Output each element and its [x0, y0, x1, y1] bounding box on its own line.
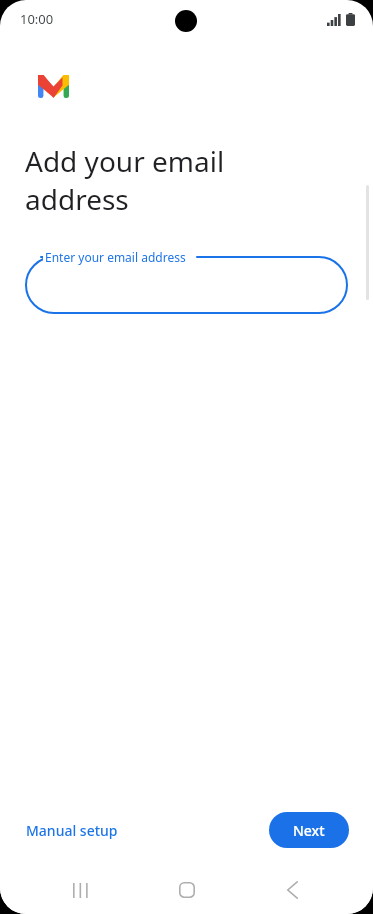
button[interactable]: Manual setup	[24, 813, 120, 848]
staticText: 10:00	[20, 10, 54, 28]
button[interactable]: Recent apps	[57, 866, 105, 914]
button[interactable]: Home	[163, 866, 211, 914]
button[interactable]: Back	[268, 866, 316, 914]
staticText: Manual setup	[26, 821, 118, 840]
button[interactable]: Enter your email address	[25, 256, 348, 314]
staticText: Next	[293, 821, 325, 840]
button[interactable]: Next	[269, 812, 349, 848]
staticText: Enter your email address	[45, 249, 186, 265]
staticText: Add your email address	[25, 142, 225, 218]
